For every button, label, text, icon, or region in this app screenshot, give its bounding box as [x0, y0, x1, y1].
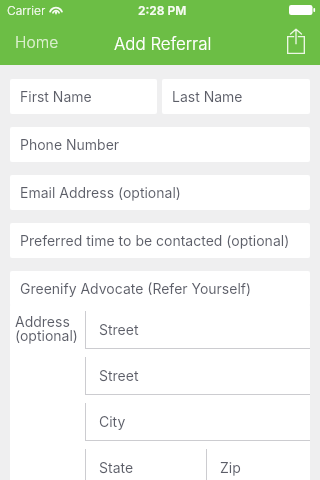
staticText: Phone Number [20, 136, 120, 153]
button[interactable]: Phone Number [10, 127, 310, 162]
staticText: Email Address (optional) [20, 184, 181, 201]
button[interactable]: Street [86, 357, 310, 394]
staticText: Home [15, 33, 59, 52]
button[interactable]: Address (optional) [10, 304, 85, 480]
staticText: Zip [220, 459, 241, 476]
staticText: Last Name [172, 88, 243, 105]
staticText: Greenify Advocate (Refer Yourself) [20, 280, 252, 297]
staticText: Street [99, 321, 139, 338]
staticText: State [99, 459, 134, 476]
staticText: Address (optional) [15, 313, 78, 344]
button[interactable]: Greenify Advocate (Refer Yourself) [10, 271, 310, 306]
staticText: Carrier [7, 3, 46, 18]
button[interactable]: Home [0, 23, 74, 62]
button[interactable]: State [86, 449, 206, 480]
button[interactable]: Street [86, 311, 310, 348]
staticText: First Name [20, 88, 92, 105]
staticText: 2:28 PM [138, 3, 187, 18]
button[interactable]: Email Address (optional) [10, 175, 310, 210]
staticText: Preferred time to be contacted (optional… [20, 232, 290, 249]
staticText: City [99, 413, 126, 430]
button[interactable]: Preferred time to be contacted (optional… [10, 223, 310, 258]
button[interactable]: City [86, 403, 310, 440]
button[interactable]: Last Name [162, 79, 310, 114]
button[interactable]: Zip [207, 449, 310, 480]
button[interactable]: First Name [10, 79, 157, 114]
button[interactable]: Share [276, 21, 316, 61]
staticText: Add Referral [114, 34, 212, 54]
staticText: Street [99, 367, 139, 384]
